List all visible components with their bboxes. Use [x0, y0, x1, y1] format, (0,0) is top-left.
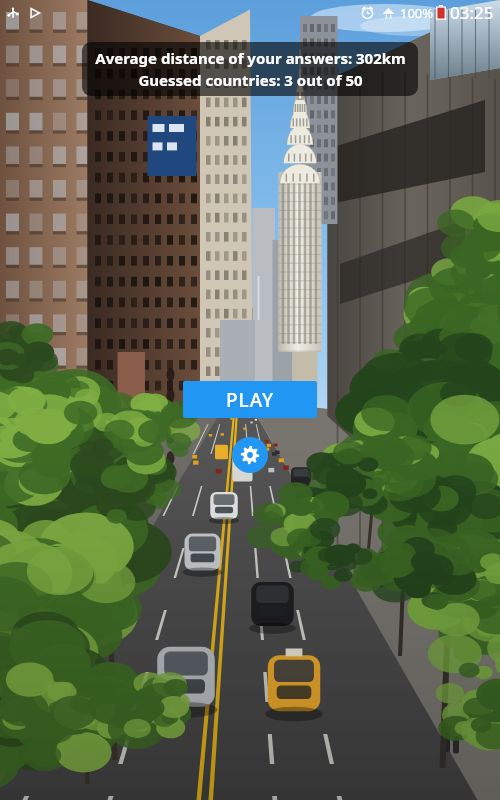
button[interactable]: PLAY — [183, 381, 317, 418]
button[interactable]: Settings — [232, 437, 268, 473]
staticText: Average distance of your answers: 302km — [95, 48, 406, 68]
staticText: PLAY — [226, 387, 275, 413]
staticText: 03:25 — [450, 1, 494, 24]
staticText: Guessed countries: 3 out of 50 — [138, 70, 363, 90]
staticText: 100% — [400, 4, 434, 22]
